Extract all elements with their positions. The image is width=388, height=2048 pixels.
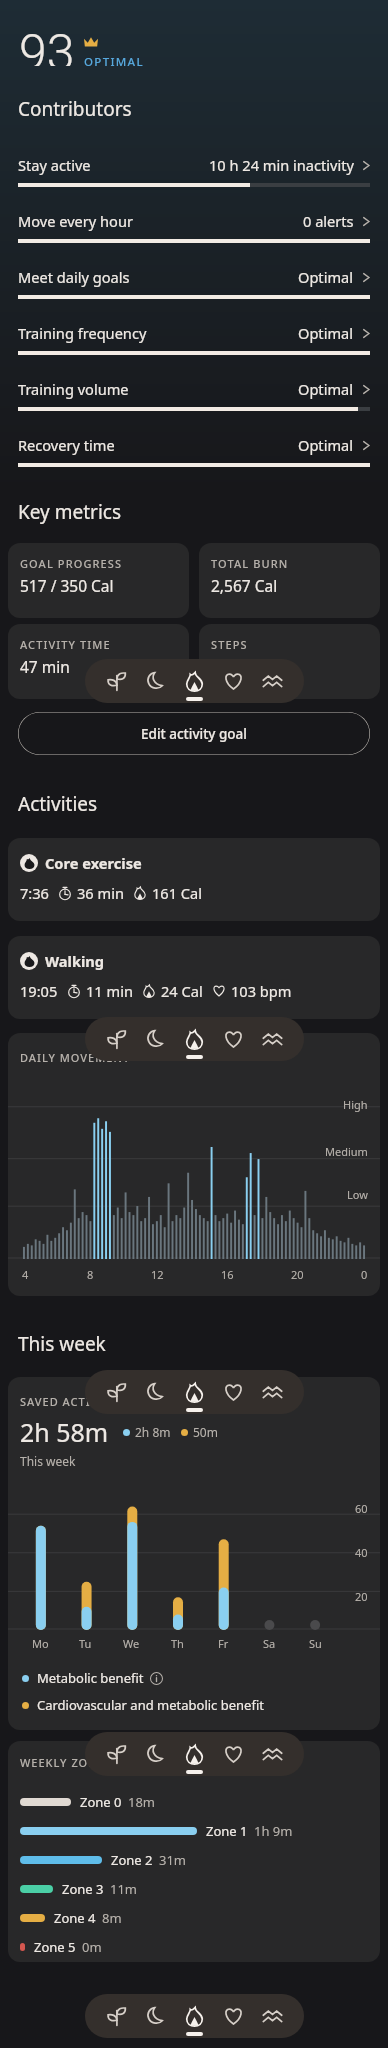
staticText: 7:36 xyxy=(20,883,49,903)
staticText: Recovery time xyxy=(18,435,115,455)
staticText: This week xyxy=(18,1331,106,1357)
button[interactable]: Trends xyxy=(253,659,292,703)
staticText: Meet daily goals xyxy=(18,267,130,287)
button[interactable]: Heart rate xyxy=(214,1994,253,2038)
staticText: 517 / 350 Cal xyxy=(20,575,114,596)
button[interactable]: Heart rate xyxy=(214,1017,253,1061)
staticText: Stay active xyxy=(18,155,91,175)
button[interactable]: STEPS xyxy=(199,624,380,699)
staticText: Th xyxy=(171,1636,184,1651)
button[interactable]: Sleep xyxy=(136,659,175,703)
staticText: Core exercise xyxy=(45,853,142,873)
button[interactable]: Heart rate xyxy=(214,1732,253,1776)
button[interactable]: TOTAL BURN xyxy=(199,543,380,618)
staticText: Zone 3 xyxy=(62,1880,104,1898)
button[interactable]: Plants xyxy=(97,659,136,703)
staticText: Edit activity goal xyxy=(141,725,247,743)
button[interactable]: Core exercise xyxy=(8,838,380,921)
button[interactable]: Sleep xyxy=(136,1994,175,2038)
button[interactable]: Plants xyxy=(97,1994,136,2038)
button[interactable]: Move every hour xyxy=(0,211,388,267)
button[interactable]: Heart rate xyxy=(214,659,253,703)
staticText: 18m xyxy=(128,1793,156,1811)
staticText: Move every hour xyxy=(18,211,133,231)
staticText: 40 xyxy=(355,1545,368,1560)
button[interactable]: Edit activity goal xyxy=(18,712,370,755)
button[interactable]: Plants xyxy=(97,1732,136,1776)
staticText: 50m xyxy=(193,1424,218,1440)
staticText: 47 min xyxy=(20,656,70,677)
staticText: 60 xyxy=(355,1501,368,1516)
staticText: 19:05 xyxy=(20,981,58,1001)
staticText: Zone 2 xyxy=(111,1851,153,1869)
staticText: 11m xyxy=(110,1880,138,1898)
staticText: 31m xyxy=(159,1851,187,1869)
staticText: 24 Cal xyxy=(161,981,203,1001)
button[interactable]: Meet daily goals xyxy=(0,267,388,323)
button[interactable]: Plants xyxy=(97,1370,136,1414)
staticText: ACTIVITY TIME xyxy=(20,637,111,652)
staticText: Activities xyxy=(18,791,98,817)
button[interactable]: Stay active xyxy=(0,155,388,211)
button[interactable]: ACTIVITY TIME xyxy=(8,624,189,699)
staticText: Key metrics xyxy=(18,499,122,525)
staticText: Optimal xyxy=(298,435,354,455)
staticText: 2h 8m xyxy=(135,1424,171,1440)
staticText: Su xyxy=(309,1636,322,1651)
button[interactable]: Recovery time xyxy=(0,435,388,491)
staticText: Contributors xyxy=(18,96,132,122)
staticText: WEEKLY ZONE MINUTES xyxy=(20,1755,165,1770)
button[interactable]: Walking xyxy=(8,936,380,1019)
button[interactable]: WEEKLY ZONE MINUTES xyxy=(8,1741,380,1962)
button[interactable]: Activity xyxy=(175,1017,214,1061)
staticText: Zone 1 xyxy=(206,1822,248,1840)
button[interactable]: SAVED ACTIVITY TIME xyxy=(8,1377,380,1730)
staticText: TOTAL BURN xyxy=(211,556,289,571)
staticText: 0 xyxy=(361,1267,368,1282)
staticText: Walking xyxy=(45,951,105,971)
button[interactable]: Plants xyxy=(97,1017,136,1061)
staticText: High xyxy=(343,1097,368,1112)
staticText: 0 alerts xyxy=(303,211,354,231)
button[interactable]: Trends xyxy=(253,1732,292,1776)
staticText: Optimal xyxy=(298,267,354,287)
staticText: Optimal xyxy=(298,323,354,343)
staticText: Cardiovascular and metabolic benefit xyxy=(37,1696,264,1714)
staticText: Zone 4 xyxy=(54,1909,96,1927)
staticText: Training frequency xyxy=(18,323,147,343)
button[interactable]: Trends xyxy=(253,1017,292,1061)
button[interactable]: Sleep xyxy=(136,1732,175,1776)
staticText: This week xyxy=(20,1453,76,1469)
staticText: 1h 9m xyxy=(254,1822,293,1840)
button[interactable]: DAILY MOVEMENT xyxy=(8,1033,380,1296)
staticText: GOAL PROGRESS xyxy=(20,556,123,571)
button[interactable]: Training volume xyxy=(0,379,388,435)
staticText: 2h 58m xyxy=(20,1415,109,1449)
button[interactable]: Activity xyxy=(175,1994,214,2038)
button[interactable]: Sleep xyxy=(136,1017,175,1061)
staticText: Sa xyxy=(263,1636,276,1651)
button[interactable]: Sleep xyxy=(136,1370,175,1414)
staticText: 8 xyxy=(87,1267,94,1282)
staticText: 12 xyxy=(151,1267,164,1282)
button[interactable]: Trends xyxy=(253,1370,292,1414)
staticText: Low xyxy=(347,1187,368,1202)
button[interactable]: Trends xyxy=(253,1994,292,2038)
staticText: Metabolic benefit xyxy=(37,1669,144,1687)
button[interactable]: Activity xyxy=(175,1732,214,1776)
staticText: 10 h 24 min inactivity xyxy=(209,155,354,175)
button[interactable]: Activity xyxy=(175,1370,214,1414)
staticText: 103 bpm xyxy=(231,981,292,1001)
button[interactable]: Activity xyxy=(175,659,214,703)
staticText: 161 Cal xyxy=(152,883,203,903)
staticText: 36 min xyxy=(77,883,124,903)
button[interactable]: GOAL PROGRESS xyxy=(8,543,189,618)
staticText: 0m xyxy=(82,1938,102,1956)
button[interactable]: Heart rate xyxy=(214,1370,253,1414)
staticText: SAVED ACTIVITY TIME xyxy=(20,1394,153,1409)
staticText: 8m xyxy=(102,1909,122,1927)
button[interactable]: Training frequency xyxy=(0,323,388,379)
staticText: STEPS xyxy=(211,637,248,652)
staticText: 20 xyxy=(355,1589,368,1604)
staticText: Medium xyxy=(325,1144,368,1159)
